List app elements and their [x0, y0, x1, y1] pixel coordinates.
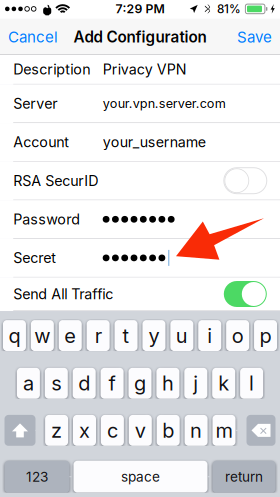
button[interactable]: r: [87, 320, 110, 351]
staticText: Password: [13, 211, 80, 228]
staticText: n: [190, 418, 202, 442]
button[interactable]: j: [184, 368, 207, 399]
button[interactable]: l: [240, 368, 263, 399]
button[interactable]: v: [129, 415, 152, 446]
button[interactable]: Delete: [246, 415, 275, 446]
staticText: i: [207, 323, 212, 348]
staticText: t: [122, 323, 129, 348]
button[interactable]: 123: [4, 461, 69, 493]
button[interactable]: Shift: [4, 415, 35, 446]
staticText: 7:29 PM: [115, 1, 164, 16]
button[interactable]: Save: [229, 19, 280, 55]
staticText: Account: [13, 133, 69, 151]
staticText: o: [232, 323, 244, 348]
staticText: 81%: [217, 2, 241, 16]
button[interactable]: k: [212, 368, 235, 399]
button[interactable]: Send All Traffic: [0, 277, 280, 311]
button[interactable]: Description: [0, 55, 280, 84]
staticText: g: [134, 371, 146, 395]
staticText: space: [121, 468, 160, 485]
staticText: Add Configuration: [73, 28, 206, 46]
staticText: a: [23, 371, 34, 395]
button[interactable]: x: [73, 415, 96, 446]
staticText: h: [162, 371, 174, 395]
button[interactable]: a: [17, 368, 40, 399]
button[interactable]: n: [185, 415, 208, 446]
button[interactable]: Account: [0, 123, 280, 162]
staticText: m: [215, 418, 232, 442]
staticText: RSA SecurID: [13, 172, 98, 189]
button[interactable]: s: [45, 368, 68, 399]
button[interactable]: b: [157, 415, 180, 446]
staticText: d: [78, 371, 90, 395]
staticText: p: [260, 323, 272, 348]
button[interactable]: Server: [0, 84, 280, 123]
button[interactable]: return: [212, 461, 275, 493]
button[interactable]: w: [31, 320, 54, 351]
staticText: f: [109, 371, 116, 395]
staticText: k: [218, 371, 229, 395]
button[interactable]: RSA SecurID: [0, 162, 280, 200]
button[interactable]: m: [212, 415, 235, 446]
button[interactable]: space: [73, 461, 207, 493]
button[interactable]: i: [198, 320, 221, 351]
staticText: Description: [13, 61, 90, 78]
button[interactable]: z: [45, 415, 68, 446]
button[interactable]: g: [128, 368, 151, 399]
button[interactable]: u: [170, 320, 193, 351]
staticText: Send All Traffic: [13, 285, 113, 303]
staticText: b: [162, 418, 174, 442]
button[interactable]: y: [142, 320, 165, 351]
staticText: e: [64, 323, 76, 348]
staticText: Save: [237, 28, 272, 46]
staticText: z: [51, 418, 62, 442]
button[interactable]: h: [156, 368, 179, 399]
button[interactable]: e: [59, 320, 82, 351]
staticText: Secret: [13, 249, 56, 267]
staticText: s: [51, 371, 61, 395]
staticText: r: [95, 323, 102, 348]
staticText: your_username: [103, 133, 206, 151]
button[interactable]: t: [114, 320, 137, 351]
staticText: Cancel: [8, 28, 58, 46]
staticText: your.vpn.server.com: [103, 96, 226, 111]
staticText: w: [34, 323, 50, 348]
button[interactable]: f: [101, 368, 124, 399]
staticText: j: [193, 371, 198, 395]
staticText: return: [225, 468, 263, 485]
staticText: q: [8, 323, 20, 348]
staticText: v: [135, 418, 146, 442]
button[interactable]: Secret: [0, 239, 280, 277]
staticText: l: [249, 371, 254, 395]
button[interactable]: Password: [0, 200, 280, 239]
staticText: y: [148, 323, 159, 348]
button[interactable]: o: [226, 320, 249, 351]
staticText: Server: [13, 95, 57, 112]
staticText: c: [107, 418, 118, 442]
button[interactable]: Cancel: [0, 19, 66, 55]
staticText: u: [176, 323, 188, 348]
button[interactable]: q: [3, 320, 26, 351]
staticText: 123: [26, 468, 48, 485]
button[interactable]: d: [73, 368, 96, 399]
button[interactable]: p: [254, 320, 277, 351]
button[interactable]: c: [101, 415, 124, 446]
staticText: x: [79, 418, 90, 442]
staticText: Privacy VPN: [103, 61, 187, 78]
